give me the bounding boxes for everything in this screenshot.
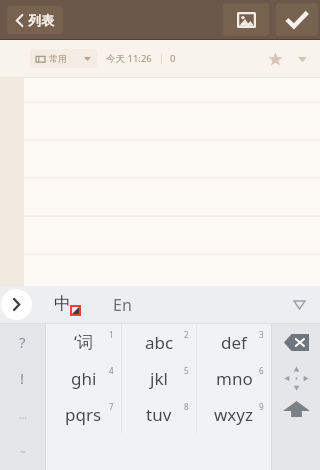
button[interactable]: ‘词 [46, 324, 121, 360]
staticText: … [19, 408, 27, 422]
button[interactable]: mno [197, 360, 271, 396]
staticText: 今天 11:26 [106, 52, 152, 65]
staticText: tuv [146, 403, 172, 426]
button[interactable]: 列表 [7, 6, 63, 34]
button[interactable]: More options [291, 48, 313, 70]
button[interactable]: Hide keyboard [286, 292, 312, 318]
button[interactable]: Shift [272, 397, 320, 470]
staticText: 1 [109, 329, 114, 340]
staticText: 3 [259, 329, 264, 340]
button[interactable]: abc [122, 324, 196, 360]
staticText: 4 [109, 365, 114, 376]
button[interactable]: pqrs [46, 396, 121, 433]
button[interactable]: ghi [46, 360, 121, 396]
button[interactable]: Backspace [272, 324, 320, 360]
staticText: 6 [259, 365, 264, 376]
staticText: abc [145, 331, 174, 354]
staticText: 7 [109, 401, 114, 412]
staticText: jkl [150, 367, 168, 390]
staticText: 0 [170, 52, 176, 65]
staticText: ! [20, 368, 25, 388]
button[interactable]: Insert image [223, 3, 269, 36]
staticText: 列表 [28, 12, 54, 28]
staticText: wxyz [214, 403, 254, 426]
staticText: 2 [184, 329, 189, 340]
staticText: 中 [54, 293, 71, 314]
staticText: ghi [71, 367, 97, 390]
button[interactable]: Done [276, 3, 318, 36]
staticText: pqrs [65, 403, 102, 426]
button[interactable]: ! [0, 360, 45, 396]
button[interactable]: 常用 [30, 49, 97, 68]
button[interactable]: Favourite [262, 46, 288, 72]
button[interactable]: Expand candidates [1, 289, 32, 320]
button[interactable]: ? [0, 324, 45, 360]
staticText: En [113, 294, 132, 316]
staticText: ‘词 [74, 331, 93, 353]
staticText: 8 [184, 401, 189, 412]
staticText: 常用 [49, 53, 67, 64]
staticText: mno [216, 367, 253, 390]
staticText: def [221, 331, 247, 354]
button[interactable]: def [197, 324, 271, 360]
staticText: ? [19, 332, 26, 352]
button[interactable]: tuv [122, 396, 196, 433]
staticText: ~ [20, 445, 26, 459]
button[interactable]: wxyz [197, 396, 271, 433]
button[interactable]: jkl [122, 360, 196, 396]
staticText: 9 [259, 401, 264, 412]
staticText: 5 [184, 365, 189, 376]
button[interactable]: Move cursor [272, 360, 320, 397]
button[interactable]: Chinese input mode [46, 286, 86, 323]
